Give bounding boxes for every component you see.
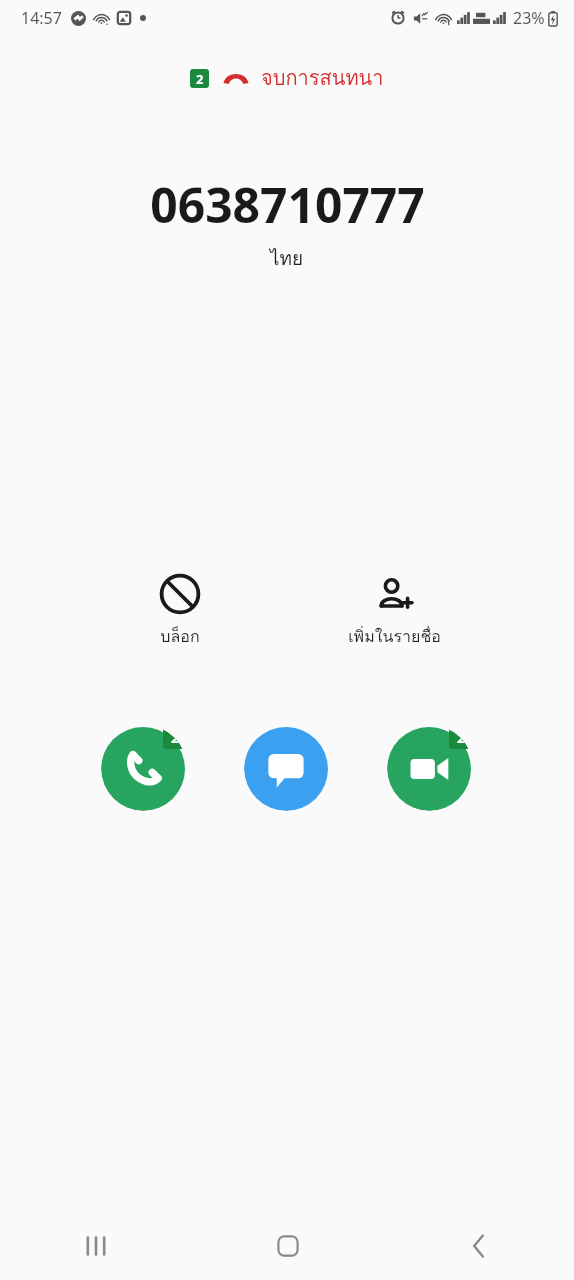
- staticText: เพิ่มในรายชื่อ: [348, 624, 441, 649]
- button[interactable]: Add to contacts: [319, 570, 469, 653]
- staticText: 14:57: [21, 7, 62, 29]
- button[interactable]: Home: [192, 1212, 383, 1280]
- staticText: บล็อก: [160, 624, 200, 649]
- staticText: 23%: [513, 7, 545, 29]
- button[interactable]: Block: [105, 570, 255, 653]
- button[interactable]: Call: [101, 725, 187, 811]
- button[interactable]: Message: [244, 725, 330, 811]
- staticText: ไทย: [270, 243, 304, 273]
- button[interactable]: Recents: [0, 1212, 192, 1280]
- staticText: จบการสนทนา: [261, 62, 384, 94]
- staticText: 2: [457, 727, 466, 747]
- button[interactable]: Video call: [387, 725, 473, 811]
- staticText: 2: [171, 727, 180, 747]
- button[interactable]: Back: [383, 1212, 574, 1280]
- staticText: 0638710777: [150, 172, 425, 237]
- staticText: 2: [196, 70, 204, 88]
